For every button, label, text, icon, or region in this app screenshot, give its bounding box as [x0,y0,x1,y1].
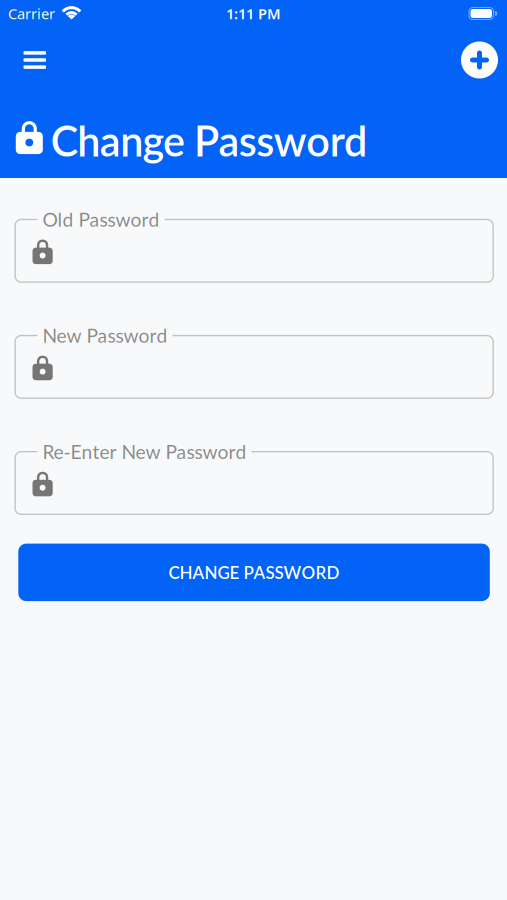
staticText: Re-Enter New Password [42,440,246,463]
button[interactable]: Add [461,41,498,78]
staticText: CHANGE PASSWORD [169,562,340,582]
button[interactable]: CHANGE PASSWORD [18,544,490,601]
staticText: Change Password [51,116,367,165]
staticText: 1:11 PM [226,4,281,23]
staticText: Carrier [8,4,55,23]
staticText: New Password [42,324,167,347]
staticText: Old Password [42,208,159,231]
button[interactable]: Menu [17,45,52,75]
